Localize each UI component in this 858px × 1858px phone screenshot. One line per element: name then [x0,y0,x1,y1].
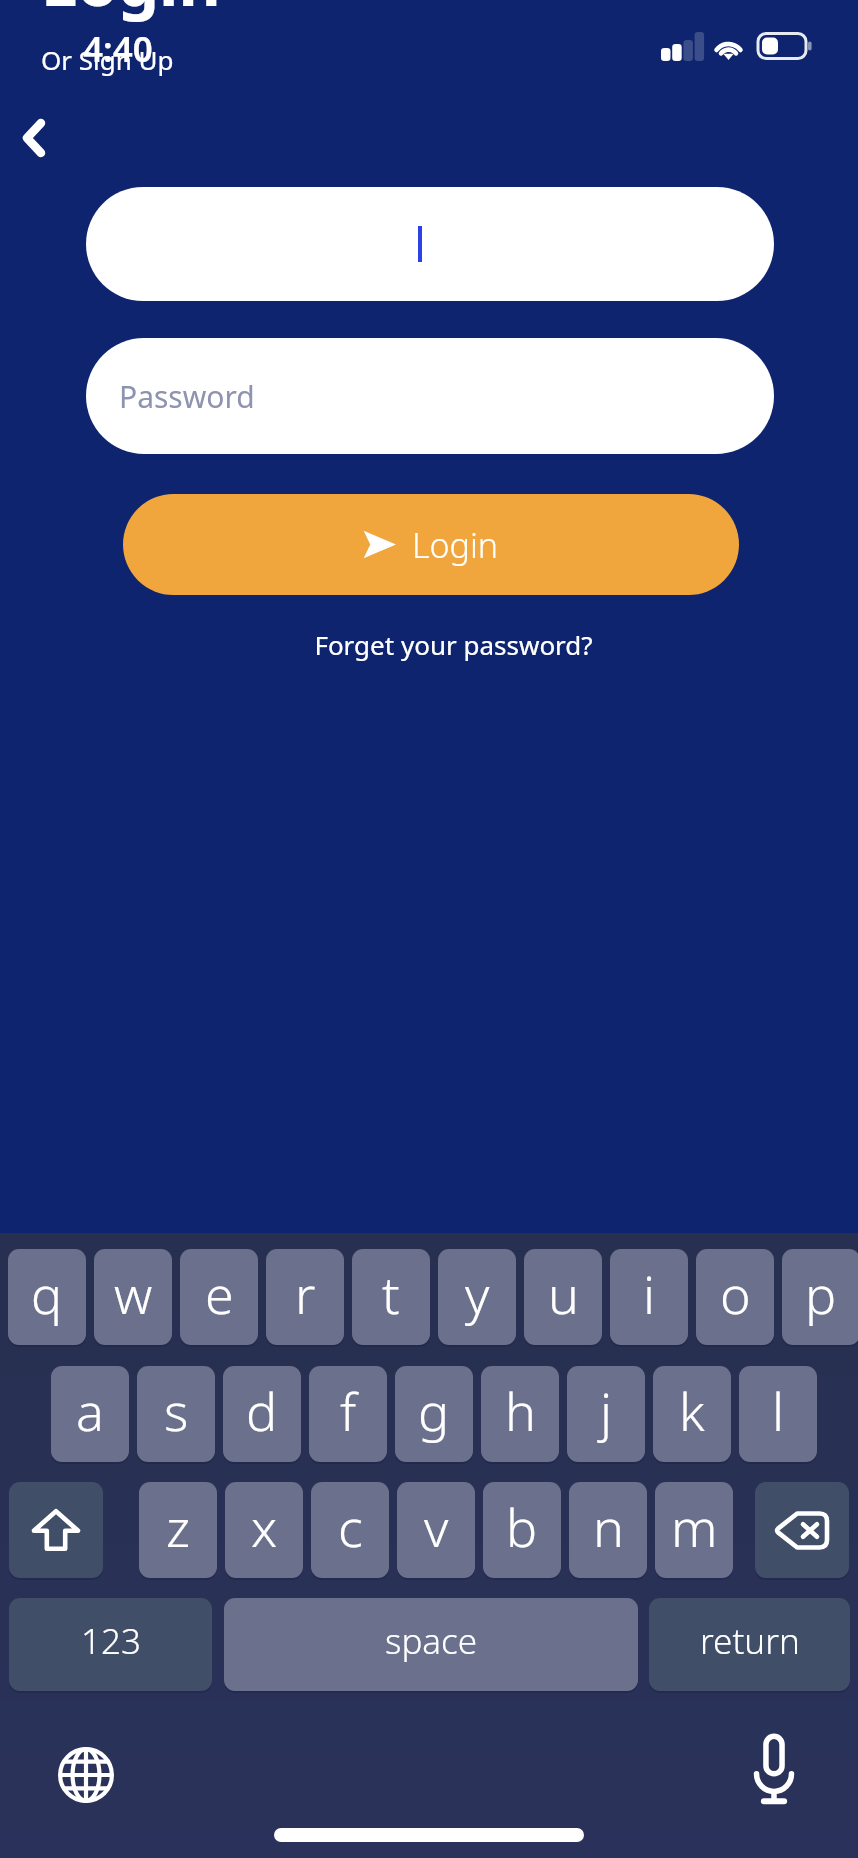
staticText: w [114,1258,153,1329]
staticText: return [700,1617,800,1665]
staticText: h [505,1375,536,1446]
staticText: x [251,1491,278,1562]
staticText: 123 [81,1617,141,1665]
staticText: l [772,1375,785,1446]
button[interactable]: o [696,1249,774,1345]
staticText: o [720,1258,751,1329]
button[interactable]: e [180,1249,258,1345]
staticText: d [246,1375,278,1446]
button[interactable]: z [139,1482,217,1578]
staticText: c [338,1491,363,1562]
staticText: e [205,1258,234,1329]
staticText: a [76,1375,104,1446]
button[interactable]: l [739,1366,817,1462]
staticText: v [424,1491,449,1562]
staticText: p [805,1258,837,1329]
button[interactable]: c [311,1482,389,1578]
button[interactable]: m [655,1482,733,1578]
staticText: Password [119,376,255,417]
button[interactable]: s [137,1366,215,1462]
staticText: y [465,1258,490,1329]
staticText: b [506,1491,538,1562]
staticText: r [295,1258,316,1329]
button[interactable]: r [266,1249,344,1345]
button[interactable]: space [224,1598,638,1691]
staticText: j [600,1375,613,1446]
button[interactable]: Backspace [755,1482,849,1578]
button[interactable]: Shift [9,1482,103,1578]
button[interactable]: d [223,1366,301,1462]
button[interactable]: Forget your password? [314,627,593,662]
staticText: f [340,1375,357,1446]
button[interactable]: p [782,1249,858,1345]
staticText: k [679,1375,705,1446]
button[interactable] [86,187,774,301]
button[interactable]: w [94,1249,172,1345]
button[interactable]: y [438,1249,516,1345]
staticText: n [593,1491,624,1562]
staticText: q [31,1258,63,1329]
staticText: u [548,1258,579,1329]
staticText: Forget your password? [314,627,593,662]
staticText: z [166,1491,191,1562]
button[interactable]: v [397,1482,475,1578]
button[interactable]: a [51,1366,129,1462]
staticText: s [164,1375,189,1446]
staticText: Login [412,522,499,568]
button[interactable]: Dictate [738,1733,810,1805]
button[interactable]: n [569,1482,647,1578]
button[interactable]: i [610,1249,688,1345]
button[interactable]: 123 [9,1598,212,1691]
button[interactable]: return [649,1598,850,1691]
staticText: Login [41,0,221,26]
button[interactable]: j [567,1366,645,1462]
staticText: g [418,1375,450,1446]
button[interactable]: Password [86,338,774,454]
button[interactable]: q [8,1249,86,1345]
staticText: 4:40 [83,25,153,73]
button[interactable]: Back [0,104,68,172]
button[interactable]: f [309,1366,387,1462]
button[interactable]: x [225,1482,303,1578]
button[interactable]: k [653,1366,731,1462]
button[interactable]: Login [123,494,739,595]
staticText: t [382,1258,400,1329]
button[interactable]: h [481,1366,559,1462]
button[interactable]: g [395,1366,473,1462]
staticText: space [385,1617,478,1665]
button[interactable]: b [483,1482,561,1578]
button[interactable]: t [352,1249,430,1345]
staticText: Or Sign Up [41,42,174,77]
staticText: m [671,1491,718,1562]
button[interactable]: Change keyboard language [50,1739,122,1811]
button[interactable]: u [524,1249,602,1345]
staticText: i [643,1258,656,1329]
